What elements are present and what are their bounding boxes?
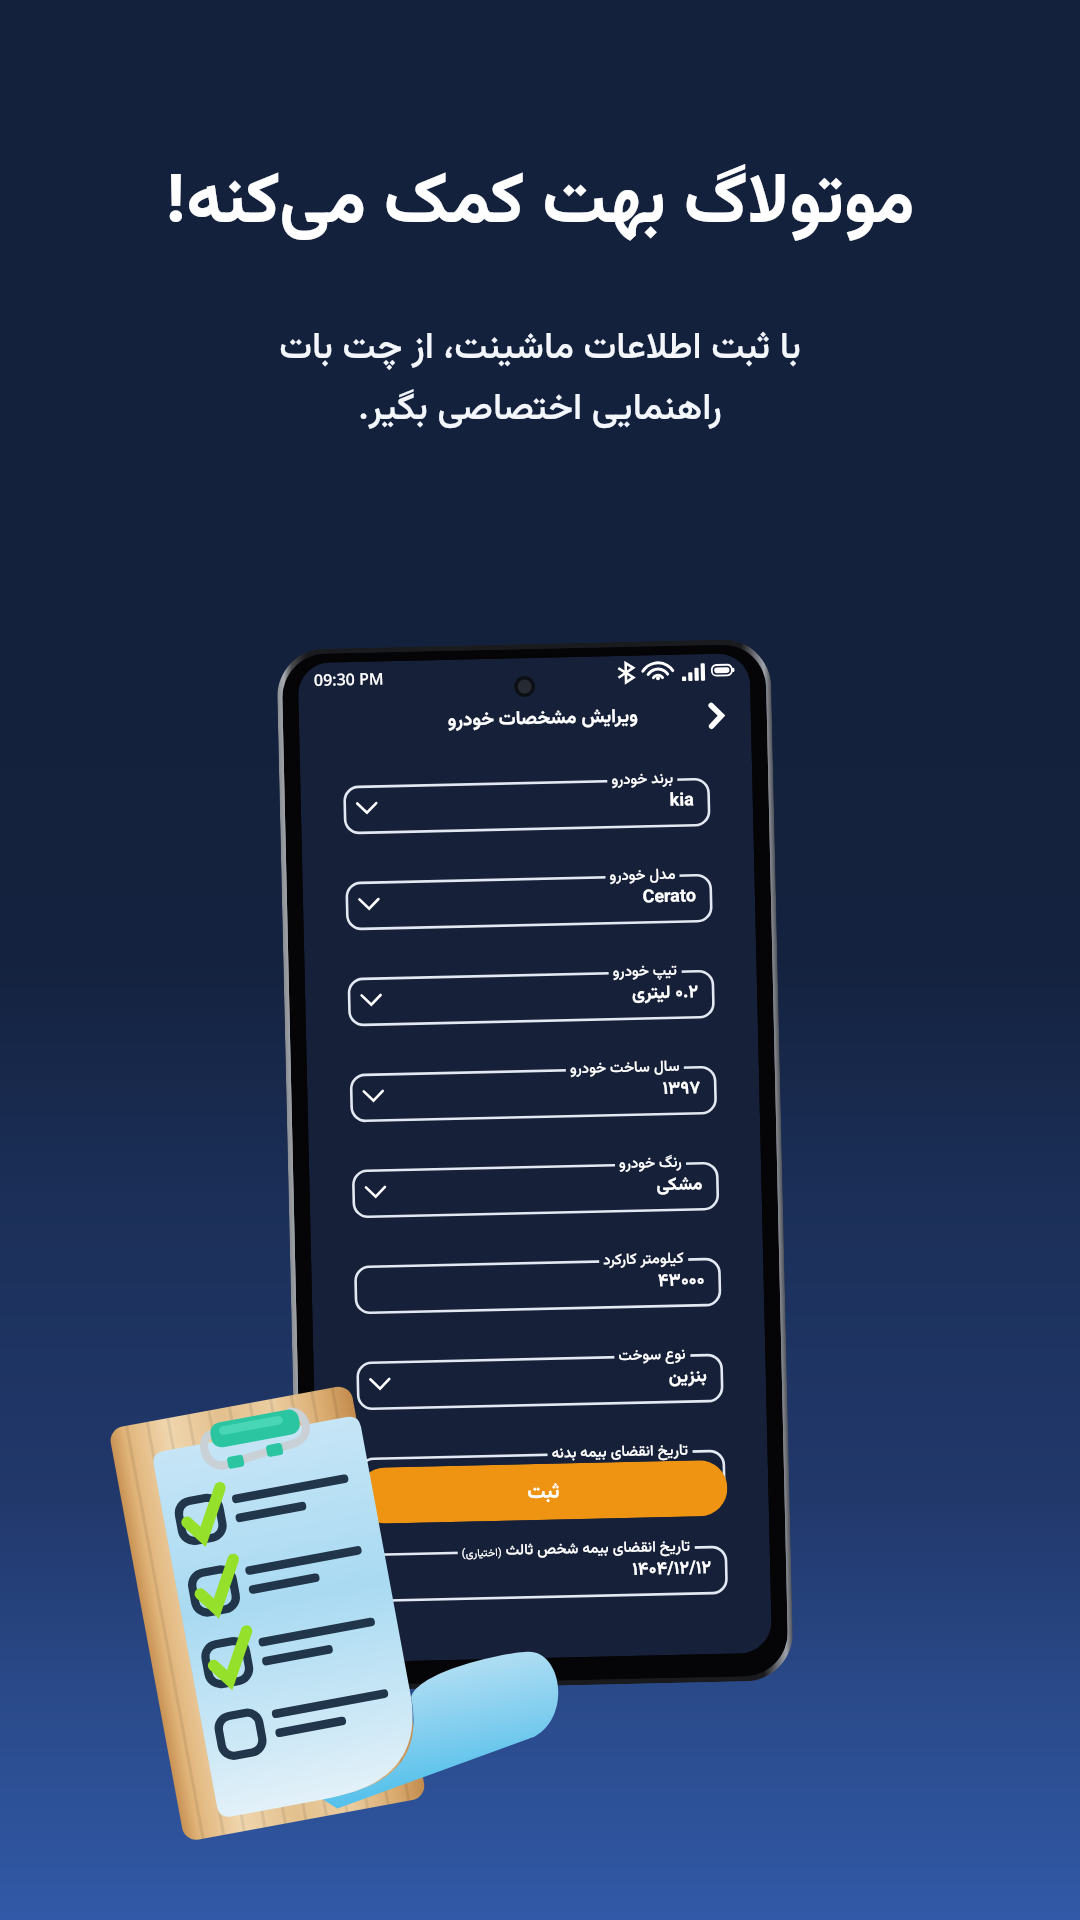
staticText: ۴۳۰۰۰ (657, 1267, 705, 1296)
staticText: تیپ خودرو (612, 960, 678, 984)
staticText: (اختیاری) (462, 1545, 502, 1563)
staticText: ویرایش مشخصات خودرو (447, 703, 638, 737)
staticText: تاریخ انقضای بیمه بدنه (551, 1440, 689, 1466)
staticText: بنزین (667, 1363, 707, 1392)
staticText: Cerato (642, 883, 696, 912)
button[interactable]: تاریخ انقضای بیمه بدنه (360, 1451, 724, 1505)
staticText: برند خودرو (611, 768, 673, 792)
button[interactable]: مدل خودرو (347, 875, 711, 929)
staticText: ۱۳۹۷ (662, 1075, 701, 1104)
button[interactable]: برند خودرو (344, 779, 709, 833)
button[interactable]: (اختیاری) (362, 1547, 727, 1601)
staticText: با ثبت اطلاعات ماشینت، از چت بات راهنمای… (279, 320, 801, 439)
staticText: کیلومتر کارکرد (603, 1248, 684, 1272)
staticText: نوع سوخت (618, 1344, 687, 1368)
staticText: مدل خودرو (609, 864, 676, 888)
staticText: 09:30 PM (314, 667, 384, 691)
staticText: رنگ خودرو (619, 1152, 682, 1176)
staticText: مشکی (655, 1171, 703, 1200)
staticText: تاریخ انقضای بیمه شخص ثالث (505, 1536, 691, 1563)
button[interactable]: رنگ خودرو (353, 1163, 718, 1217)
staticText: ثبت (526, 1476, 560, 1508)
staticText: سال ساخت خودرو (570, 1056, 680, 1081)
staticText: ۰.۲ لیتری (631, 979, 698, 1009)
button[interactable]: سال ساخت خودرو (351, 1067, 716, 1121)
staticText: موتولاگ بهت کمک می‌کنه! (165, 149, 915, 260)
button[interactable]: نوع سوخت (357, 1355, 722, 1409)
staticText: ۱۴۰۴/۱۲/۱۲ (632, 1555, 711, 1585)
button[interactable]: Back (694, 694, 737, 737)
staticText: kia (668, 787, 694, 816)
staticText: ۱۴۰۴/۱۲/۱۲ (630, 1459, 709, 1489)
button[interactable]: تیپ خودرو (349, 971, 714, 1025)
button[interactable]: کیلومتر کارکرد (355, 1259, 720, 1313)
button[interactable]: ثبت (357, 1460, 728, 1524)
